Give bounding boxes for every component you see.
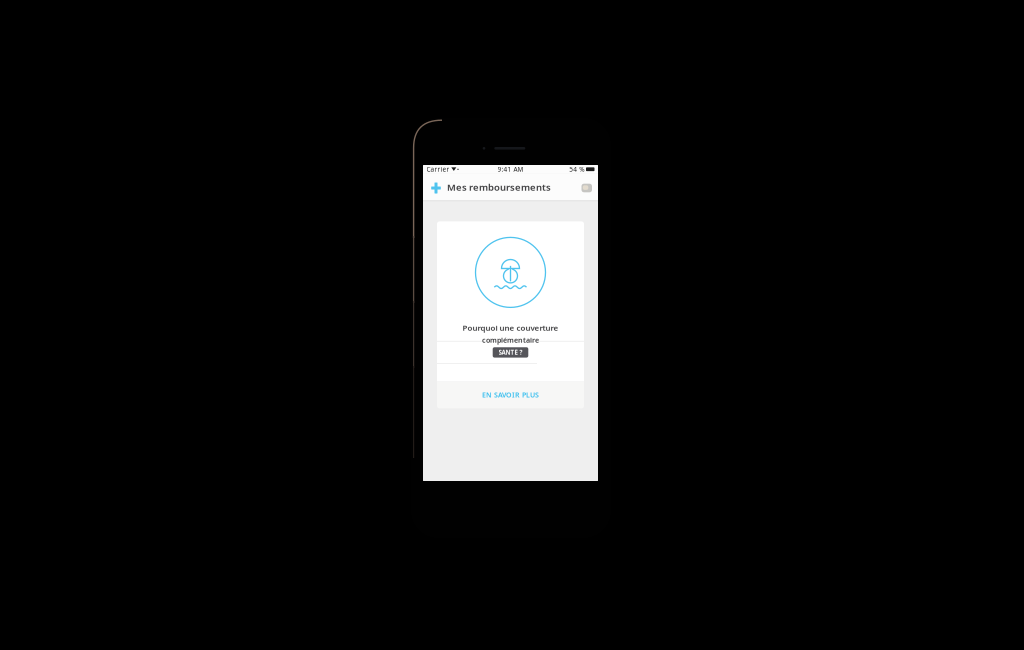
staticText: 9:41 AM xyxy=(497,165,523,174)
staticText: Pourquoi une couverture xyxy=(462,322,558,333)
staticText: EN SAVOIR PLUS xyxy=(482,390,539,400)
staticText: SANTÉ ? xyxy=(498,348,522,357)
staticText: 54 % xyxy=(569,165,584,174)
button[interactable]: Mon compte xyxy=(581,183,592,191)
button[interactable]: Nouvelle demande xyxy=(428,176,444,197)
staticText: complémentaire xyxy=(482,335,539,345)
staticText: Carrier xyxy=(426,165,449,174)
button[interactable]: EN SAVOIR PLUS xyxy=(437,381,584,408)
staticText: Mes remboursements xyxy=(447,181,551,193)
